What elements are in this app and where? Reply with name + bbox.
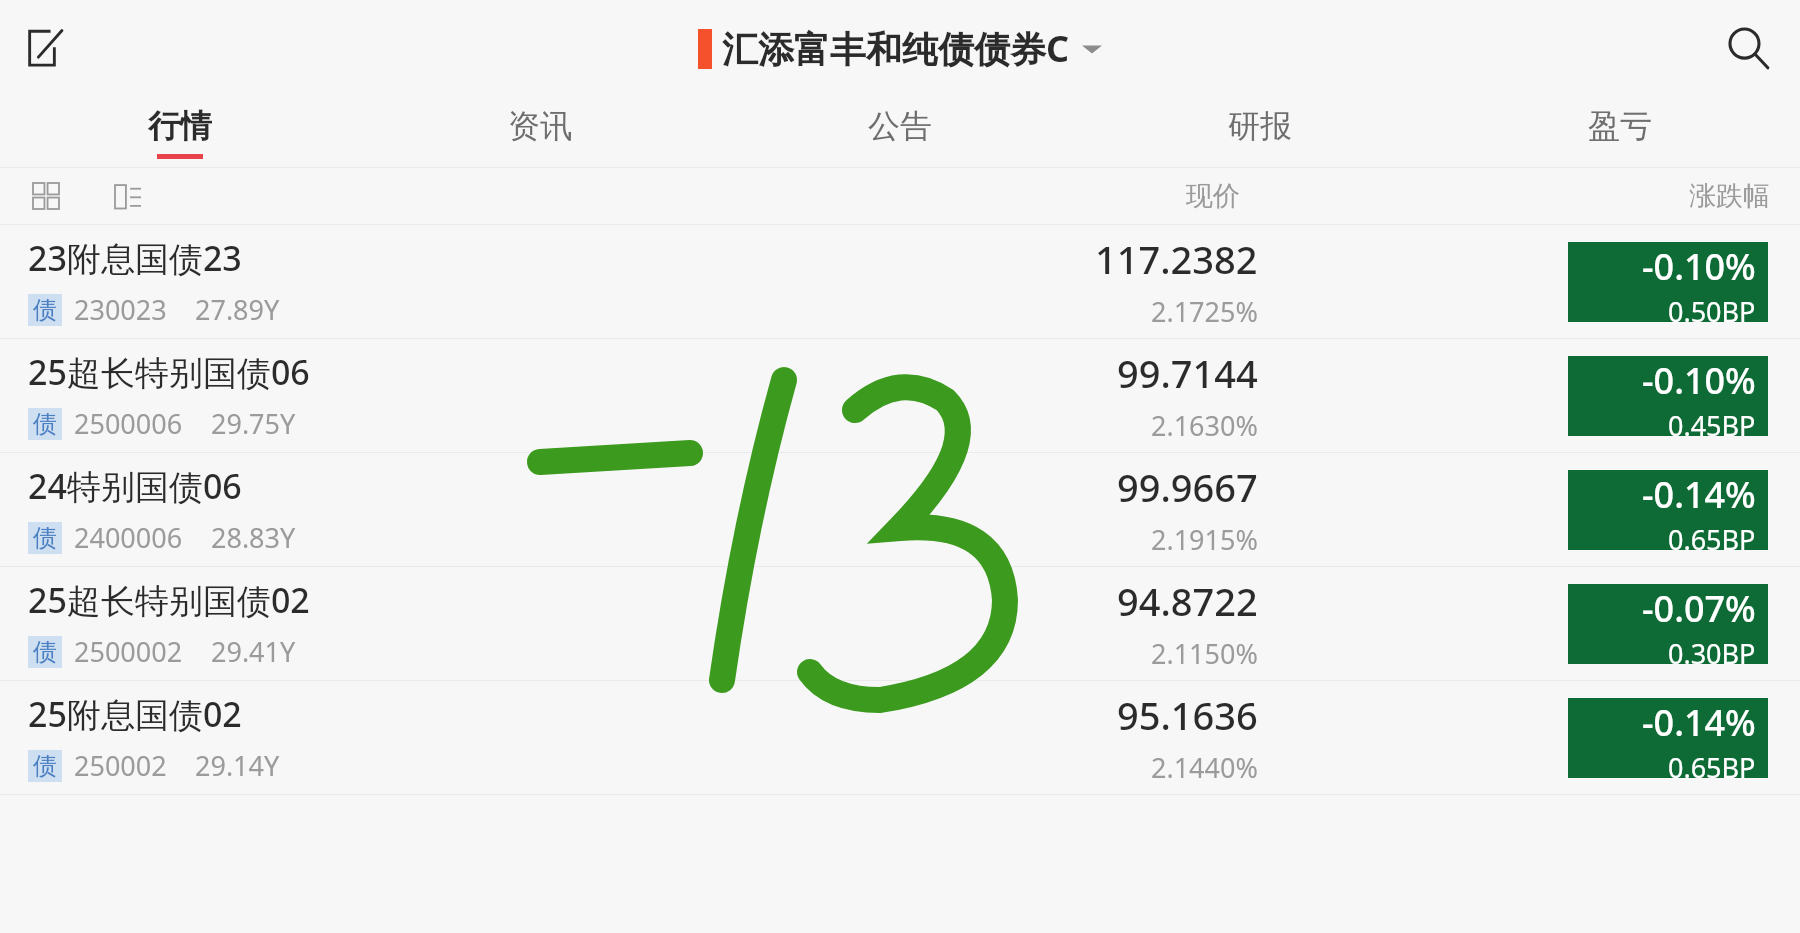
button[interactable]: 23附息国债23	[0, 224, 1800, 338]
button[interactable]: 公告	[720, 96, 1080, 168]
button[interactable]: 研报	[1080, 96, 1440, 168]
staticText: 94.8722	[1117, 575, 1258, 627]
staticText: 27.89Y	[195, 291, 280, 328]
button[interactable]: 25附息国债02	[0, 680, 1800, 794]
staticText: 23附息国债23	[28, 235, 242, 281]
button[interactable]: Search	[1716, 16, 1780, 80]
staticText: 0.65BP	[1668, 749, 1756, 778]
staticText: -0.10%	[1642, 242, 1756, 291]
staticText: 2400006	[74, 519, 183, 556]
staticText: 2.1915%	[1151, 521, 1258, 558]
button[interactable]: 盈亏	[1440, 96, 1800, 168]
button[interactable]: Grid view	[26, 176, 66, 216]
staticText: 债	[33, 751, 57, 781]
staticText: 99.7144	[1117, 347, 1258, 399]
staticText: 2500002	[74, 633, 183, 670]
staticText: 25附息国债02	[28, 691, 242, 737]
staticText: 0.65BP	[1668, 521, 1756, 550]
staticText: 现价	[1186, 179, 1240, 213]
staticText: 0.30BP	[1668, 635, 1756, 664]
staticText: 95.1636	[1117, 689, 1258, 741]
staticText: 2.1630%	[1151, 407, 1258, 444]
staticText: 99.9667	[1117, 461, 1258, 513]
staticText: 涨跌幅	[1689, 179, 1770, 213]
staticText: 债	[33, 523, 57, 553]
staticText: 债	[33, 637, 57, 667]
staticText: 2.1150%	[1151, 635, 1258, 672]
staticText: 2500006	[74, 405, 183, 442]
button[interactable]: 24特别国债06	[0, 452, 1800, 566]
staticText: 0.45BP	[1668, 407, 1756, 436]
staticText: 29.14Y	[195, 747, 280, 784]
staticText: -0.14%	[1642, 698, 1756, 747]
button[interactable]: 行情	[0, 96, 360, 168]
staticText: 117.2382	[1095, 233, 1258, 285]
staticText: 29.41Y	[211, 633, 296, 670]
staticText: 2.1440%	[1151, 749, 1258, 786]
staticText: 230023	[74, 291, 167, 328]
staticText: 0.50BP	[1668, 293, 1756, 322]
staticText: 行情	[148, 106, 212, 146]
staticText: 28.83Y	[211, 519, 296, 556]
button[interactable]: 25超长特别国债06	[0, 338, 1800, 452]
staticText: 汇添富丰和纯债债券C	[722, 24, 1070, 73]
staticText: 25超长特别国债02	[28, 577, 310, 623]
staticText: -0.14%	[1642, 470, 1756, 519]
staticText: 24特别国债06	[28, 463, 242, 509]
button[interactable]: 资讯	[360, 96, 720, 168]
staticText: 公告	[868, 106, 932, 146]
staticText: 250002	[74, 747, 167, 784]
staticText: 盈亏	[1588, 106, 1652, 146]
staticText: 资讯	[508, 106, 572, 146]
staticText: -0.07%	[1642, 584, 1756, 633]
button[interactable]: 25超长特别国债02	[0, 566, 1800, 680]
button[interactable]: Sort	[108, 176, 148, 216]
staticText: 29.75Y	[211, 405, 296, 442]
staticText: 2.1725%	[1151, 293, 1258, 330]
button[interactable]: Edit	[18, 20, 74, 76]
staticText: -0.10%	[1642, 356, 1756, 405]
staticText: 25超长特别国债06	[28, 349, 310, 395]
staticText: 债	[33, 409, 57, 439]
staticText: 债	[33, 295, 57, 325]
staticText: 研报	[1228, 106, 1292, 146]
